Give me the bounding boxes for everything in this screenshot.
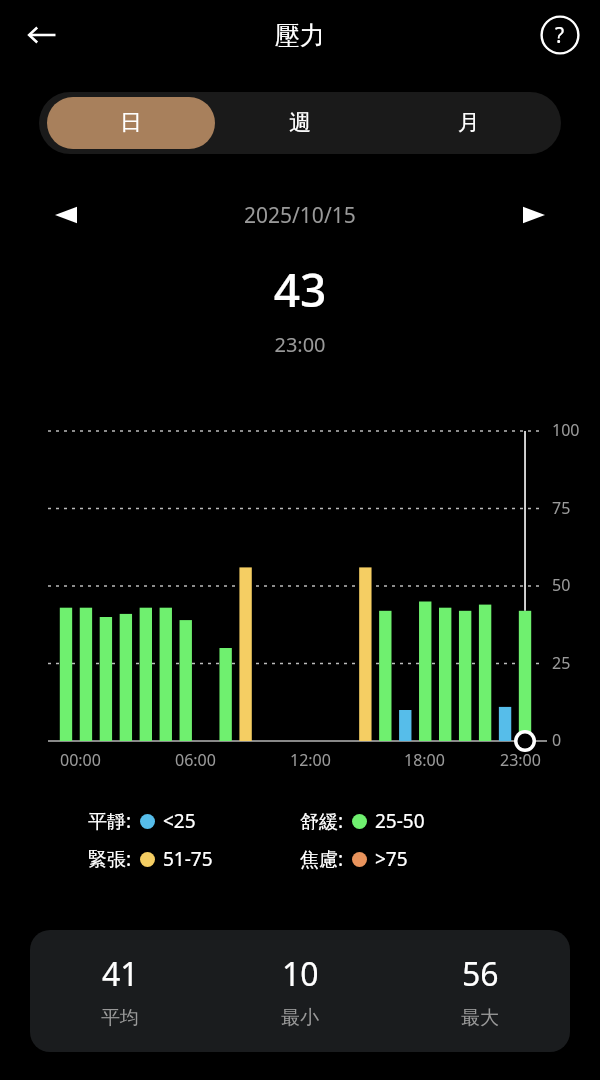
button[interactable]: 日 — [47, 97, 215, 149]
button[interactable]: 41 — [30, 930, 570, 1052]
staticText: 23:00 — [0, 331, 600, 358]
staticText: 月 — [458, 109, 480, 137]
button[interactable]: 週 — [215, 97, 384, 149]
button[interactable]: Help — [532, 7, 588, 63]
button[interactable]: Previous day — [44, 193, 88, 237]
staticText: 焦慮: — [300, 846, 344, 872]
staticText: 43 — [0, 258, 600, 321]
staticText: 平均 — [101, 1006, 139, 1030]
staticText: 緊張: — [88, 846, 132, 872]
staticText: 100 — [552, 419, 580, 441]
staticText: 51-75 — [163, 846, 213, 872]
staticText: 日 — [120, 109, 142, 137]
staticText: 2025/10/15 — [244, 201, 356, 230]
staticText: 週 — [289, 109, 311, 137]
staticText: 50 — [552, 574, 571, 596]
staticText: 0 — [552, 729, 562, 751]
staticText: 18:00 — [404, 749, 445, 771]
staticText: 23:00 — [500, 749, 541, 771]
button[interactable]: Next day — [512, 193, 556, 237]
staticText: 56 — [462, 952, 499, 996]
staticText: 最小 — [281, 1006, 319, 1030]
staticText: 舒緩: — [300, 808, 344, 834]
staticText: 06:00 — [175, 749, 216, 771]
staticText: ? — [555, 21, 565, 50]
staticText: 75 — [552, 497, 571, 519]
button[interactable]: Back — [14, 7, 70, 63]
button[interactable]: 月 — [384, 97, 553, 149]
staticText: 25 — [552, 652, 571, 674]
staticText: 10 — [282, 952, 319, 996]
staticText: 壓力 — [275, 20, 325, 51]
staticText: >75 — [375, 846, 408, 872]
staticText: 41 — [102, 952, 139, 996]
staticText: <25 — [163, 808, 196, 834]
staticText: 12:00 — [290, 749, 331, 771]
staticText: 00:00 — [60, 749, 101, 771]
staticText: 平靜: — [88, 808, 132, 834]
staticText: 最大 — [461, 1006, 499, 1030]
staticText: 25-50 — [375, 808, 425, 834]
